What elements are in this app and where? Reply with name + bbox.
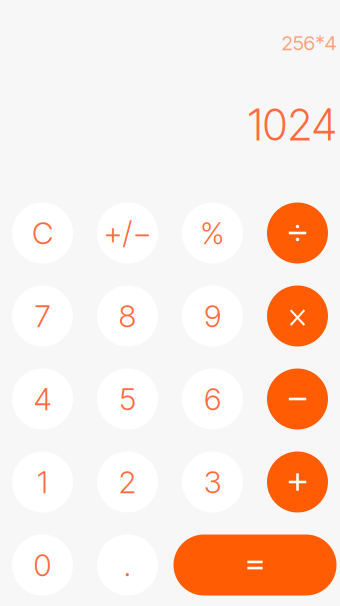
staticText: 4 <box>33 380 51 417</box>
staticText: +/− <box>103 214 151 251</box>
button[interactable]: +/− <box>97 202 158 263</box>
button[interactable]: Divide <box>267 202 328 263</box>
staticText: 1 <box>37 463 48 500</box>
button[interactable]: Equals <box>173 534 336 595</box>
staticText: 9 <box>204 297 221 334</box>
button[interactable]: 8 <box>97 285 158 346</box>
staticText: 7 <box>34 297 50 334</box>
button[interactable]: C <box>12 202 73 263</box>
button[interactable]: % <box>182 202 243 263</box>
button[interactable]: 3 <box>182 451 243 512</box>
button[interactable]: Subtract <box>267 368 328 429</box>
button[interactable]: 1 <box>12 451 73 512</box>
staticText: . <box>123 546 131 583</box>
button[interactable]: 0 <box>12 534 73 595</box>
staticText: 256*4 <box>281 31 336 55</box>
staticText: 8 <box>118 297 136 334</box>
staticText: 5 <box>119 380 136 417</box>
staticText: 1024 <box>247 99 336 151</box>
staticText: 2 <box>118 463 136 500</box>
staticText: 3 <box>203 463 221 500</box>
staticText: 6 <box>204 380 221 417</box>
button[interactable]: 4 <box>12 368 73 429</box>
button[interactable]: 2 <box>97 451 158 512</box>
button[interactable]: . <box>97 534 158 595</box>
button[interactable]: 6 <box>182 368 243 429</box>
button[interactable]: 5 <box>97 368 158 429</box>
staticText: 0 <box>33 546 51 583</box>
button[interactable]: Multiply <box>267 285 328 346</box>
staticText: % <box>200 214 224 251</box>
button[interactable]: Add <box>267 451 328 512</box>
button[interactable]: 9 <box>182 285 243 346</box>
staticText: C <box>32 214 53 251</box>
button[interactable]: 7 <box>12 285 73 346</box>
